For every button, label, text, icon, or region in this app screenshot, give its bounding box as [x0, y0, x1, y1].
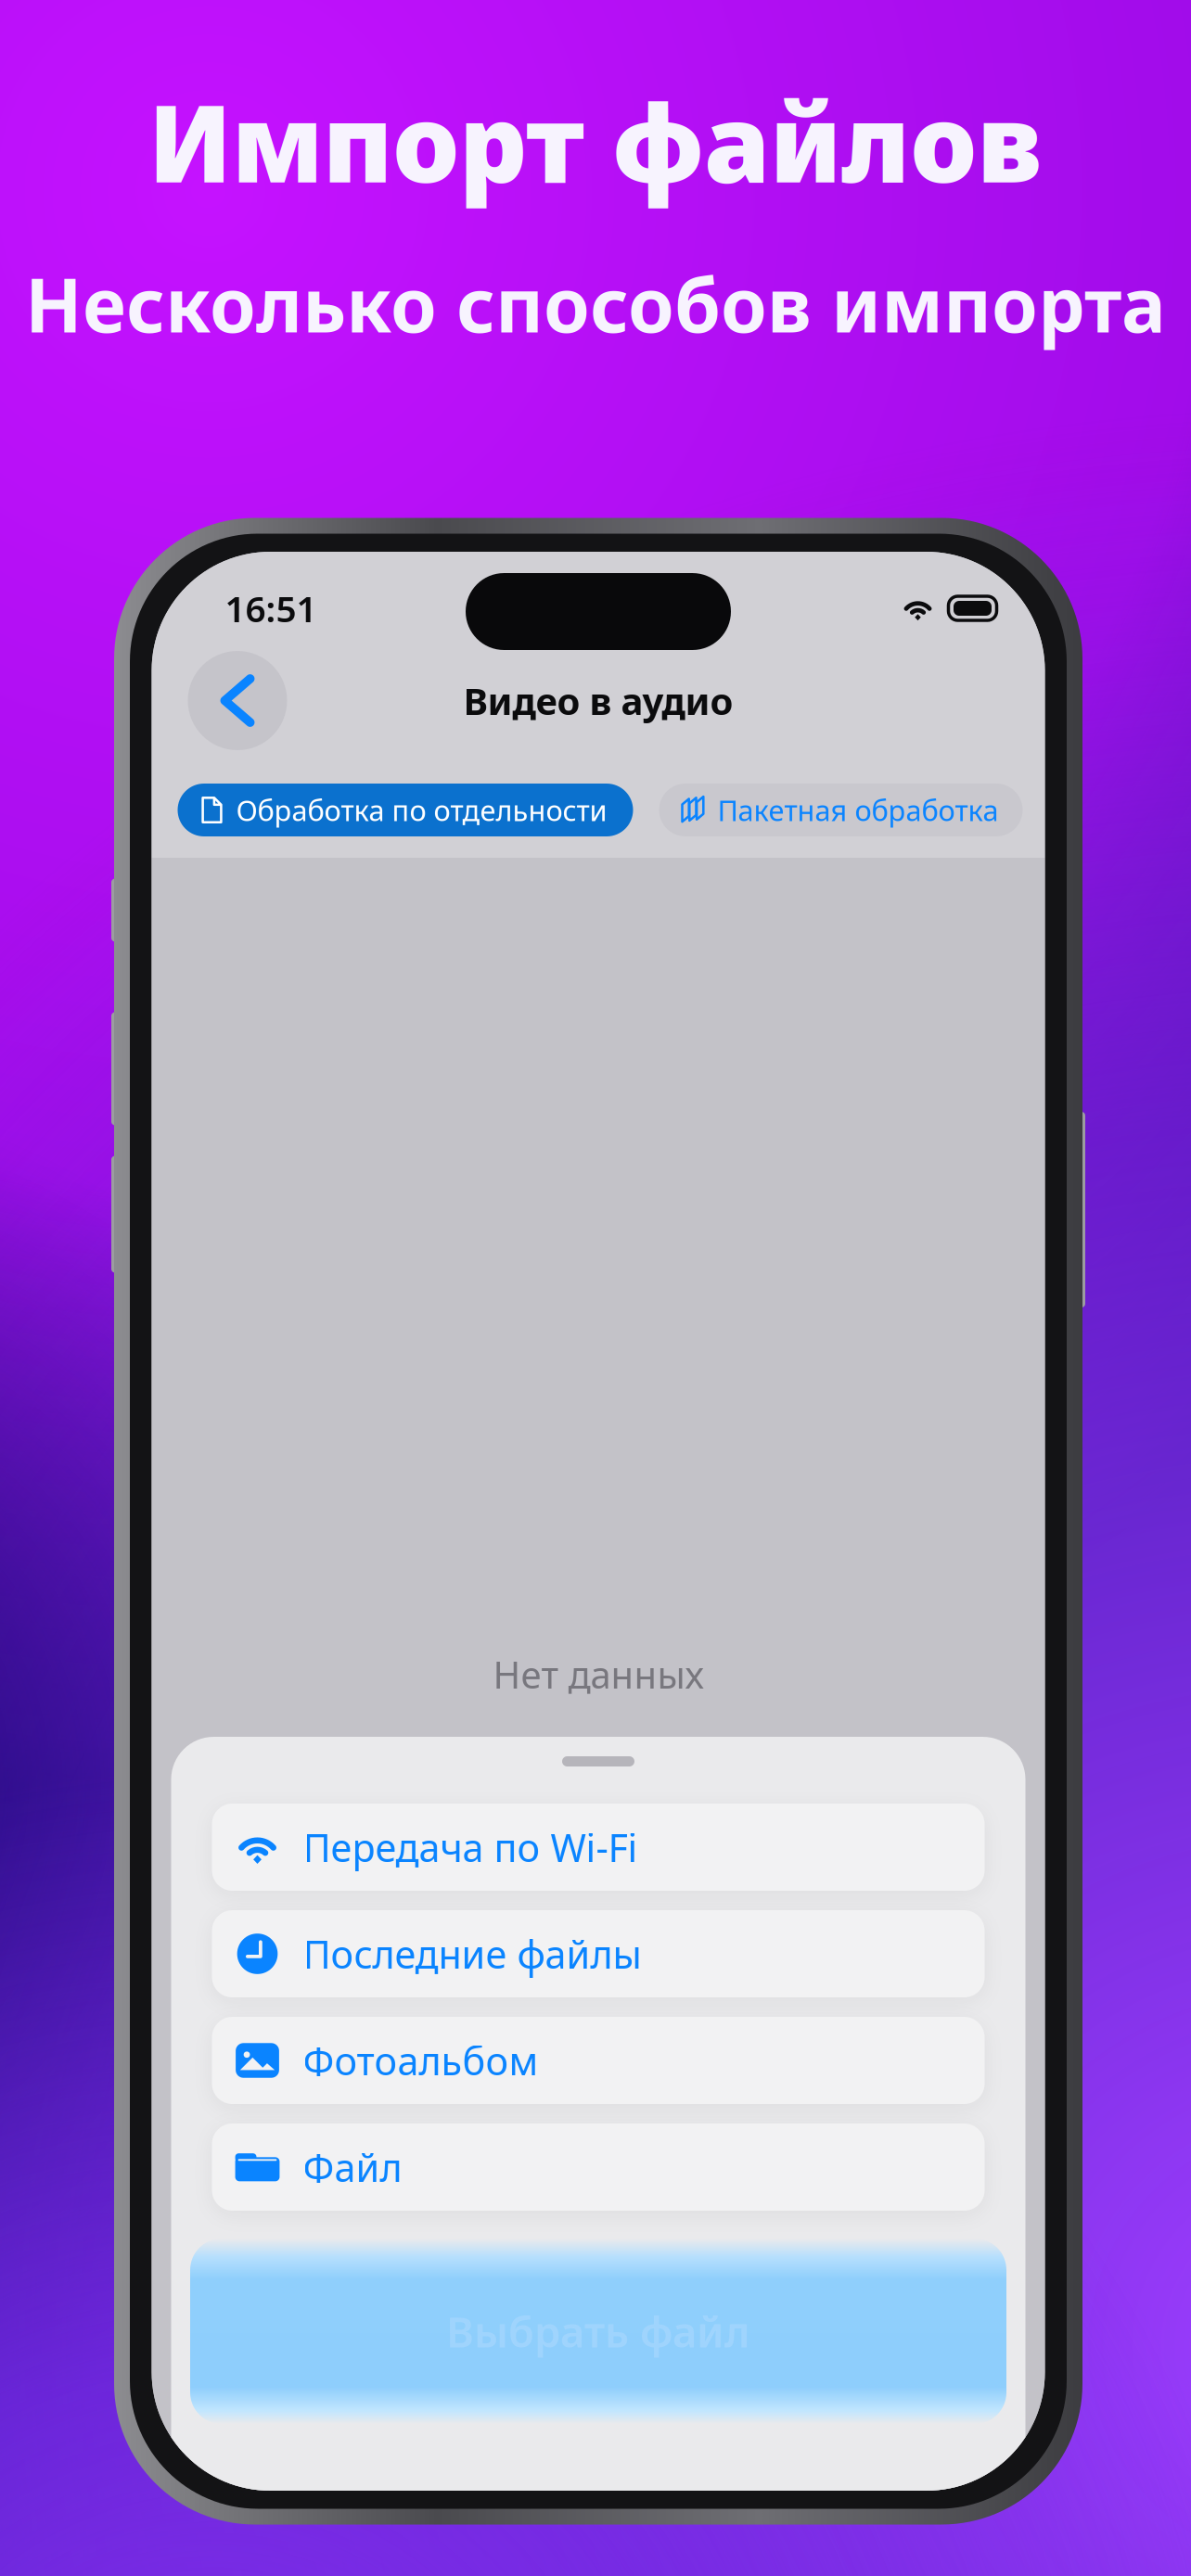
- staticText: Обработка по отдельности: [236, 791, 607, 829]
- staticText: Фотоальбом: [303, 2035, 538, 2086]
- staticText: 16:51: [225, 584, 317, 632]
- staticText: Несколько способов импорта: [25, 254, 1166, 353]
- staticText: Выбрать файл: [446, 2303, 750, 2359]
- button[interactable]: Пакетная обработка: [659, 784, 1023, 836]
- button[interactable]: Обработка по отдельности: [178, 784, 633, 836]
- button[interactable]: Выбрать файл: [190, 2238, 1006, 2424]
- button[interactable]: Последние файлы: [212, 1910, 985, 1997]
- staticText: Пакетная обработка: [717, 791, 999, 829]
- staticText: Последние файлы: [303, 1928, 641, 1979]
- button[interactable]: Файл: [212, 2123, 985, 2211]
- staticText: Импорт файлов: [148, 70, 1043, 212]
- button[interactable]: Передача по Wi-Fi: [212, 1804, 985, 1891]
- staticText: Видео в аудио: [463, 676, 733, 725]
- button[interactable]: Назад: [188, 651, 287, 750]
- staticText: Файл: [303, 2142, 402, 2193]
- button[interactable]: Фотоальбом: [212, 2017, 985, 2104]
- staticText: Передача по Wi-Fi: [303, 1822, 638, 1873]
- staticText: Нет данных: [493, 1650, 704, 1699]
